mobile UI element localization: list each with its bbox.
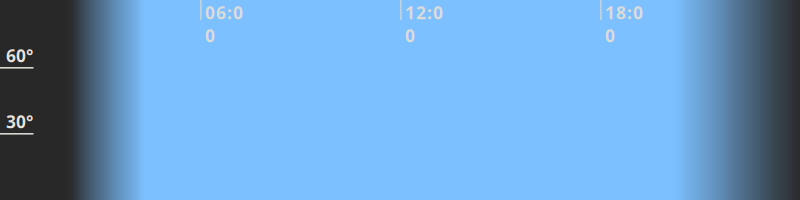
button[interactable]: 06:00 <box>200 0 800 21</box>
staticText: 12:00 <box>405 1 443 47</box>
staticText: 30° <box>6 110 33 133</box>
staticText: 06:00 <box>205 1 243 47</box>
button[interactable]: 18:00 <box>600 0 800 21</box>
staticText: 18:00 <box>605 1 643 47</box>
staticText: 60° <box>6 44 33 67</box>
button[interactable]: 12:00 <box>400 0 800 21</box>
